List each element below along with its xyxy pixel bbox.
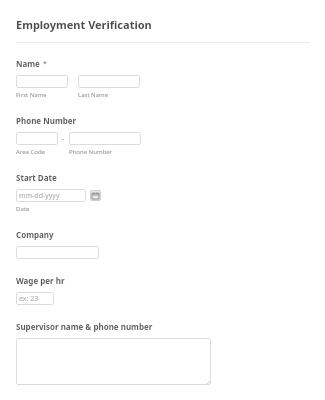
button[interactable]: [69, 132, 141, 145]
staticText: Start Date: [16, 172, 57, 183]
button[interactable]: [16, 338, 211, 385]
button[interactable]: [78, 75, 140, 88]
staticText: Date: [16, 205, 30, 213]
staticText: Phone Number: [69, 148, 113, 156]
button[interactable]: ex: 23: [16, 292, 54, 305]
button[interactable]: Pick date: [90, 190, 101, 201]
button[interactable]: [16, 246, 99, 259]
button[interactable]: mm-dd-yyyy: [16, 189, 86, 202]
staticText: mm-dd-yyyy: [19, 191, 60, 201]
staticText: Last Name: [78, 91, 109, 99]
button[interactable]: [16, 75, 68, 88]
staticText: Name: [16, 58, 40, 69]
staticText: Area Code: [16, 148, 45, 156]
staticText: Employment Verification: [16, 17, 152, 32]
staticText: ex: 23: [19, 294, 39, 304]
staticText: -: [62, 134, 65, 144]
staticText: Supervisor name & phone number: [16, 321, 153, 332]
staticText: *: [43, 59, 47, 69]
button[interactable]: [16, 132, 58, 145]
staticText: Company: [16, 229, 54, 240]
staticText: Wage per hr: [16, 275, 65, 286]
staticText: Phone Number: [16, 115, 77, 126]
staticText: First Name: [16, 91, 47, 99]
